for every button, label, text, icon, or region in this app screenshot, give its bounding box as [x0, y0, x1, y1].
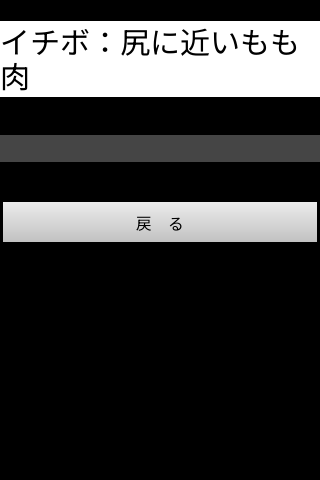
staticText: イチボ：尻に近いもも肉	[0, 23, 300, 92]
button[interactable]: 戻 る	[3, 202, 317, 242]
staticText: 戻 る	[136, 212, 184, 234]
